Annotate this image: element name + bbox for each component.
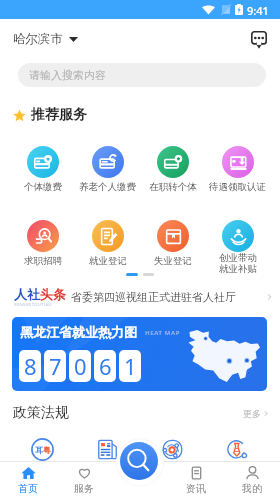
staticText: 头条 — [40, 286, 66, 302]
staticText: 耳 — [35, 445, 43, 455]
staticText: 更多 — [243, 408, 261, 419]
button[interactable]: 哈尔滨市 — [13, 31, 78, 47]
staticText: 请输入搜索内容 — [29, 68, 106, 82]
staticText: 养老个人缴费 — [79, 181, 136, 193]
button[interactable]: 就业登记 — [75, 220, 140, 267]
button[interactable]: Policy category 4 — [226, 438, 249, 461]
staticText: 待遇领取认证 — [209, 181, 266, 193]
button[interactable]: 资讯 — [168, 461, 224, 500]
staticText: 黑龙江省就业热力图 — [20, 324, 137, 340]
button[interactable]: 待遇领取认证 — [205, 146, 270, 193]
button[interactable]: 人社 — [14, 286, 272, 308]
staticText: 服务 — [74, 482, 94, 495]
staticText: 政策法规 — [13, 404, 69, 422]
staticText: 求职招聘 — [24, 255, 62, 267]
button[interactable]: 更多 — [243, 408, 268, 419]
staticText: 创业带动 就业补贴 — [219, 252, 257, 275]
button[interactable]: 失业登记 — [140, 220, 205, 267]
staticText: 6 — [99, 351, 112, 381]
button[interactable]: Policy category 2 — [96, 438, 119, 461]
staticText: 9:41 — [247, 3, 269, 18]
staticText: 1 — [124, 351, 137, 381]
staticText: 就业登记 — [89, 255, 127, 267]
button[interactable]: 黑龙江省就业热力图 — [12, 317, 267, 391]
button[interactable]: 请输入搜索内容 — [18, 63, 266, 87]
button[interactable]: 服务 — [56, 461, 112, 500]
button[interactable]: 我的 — [224, 461, 280, 500]
button[interactable]: 在职转个体 — [140, 146, 205, 193]
staticText: 首页 — [18, 482, 38, 495]
button[interactable]: 个体缴费 — [10, 146, 75, 193]
staticText: 个体缴费 — [24, 181, 62, 193]
button[interactable]: Search — [120, 442, 158, 480]
button[interactable]: Policy category 3 — [161, 438, 184, 461]
staticText: 人社 — [14, 286, 40, 302]
staticText: 0 — [74, 351, 87, 381]
staticText: 推荐服务 — [31, 106, 87, 124]
button[interactable]: Policy category 1 — [31, 438, 54, 461]
staticText: 粤 — [43, 445, 51, 455]
button[interactable]: 创业带动 就业补贴 — [205, 220, 270, 275]
staticText: 省委第四巡视组正式进驻省人社厅 — [71, 290, 267, 304]
button[interactable]: 养老个人缴费 — [75, 146, 140, 193]
staticText: 在职转个体 — [149, 181, 197, 193]
staticText: 我的 — [242, 482, 262, 495]
button[interactable]: 首页 — [0, 461, 56, 500]
staticText: 失业登记 — [154, 255, 192, 267]
staticText: 8 — [24, 351, 37, 381]
staticText: 资讯 — [186, 482, 206, 495]
staticText: 7 — [49, 351, 62, 381]
button[interactable]: 求职招聘 — [10, 220, 75, 267]
button[interactable]: Messages — [247, 28, 270, 51]
staticText: HEAT MAP — [145, 329, 181, 337]
staticText: 哈尔滨市 — [13, 31, 63, 47]
staticText: RENSHETOUTIAO — [14, 302, 52, 308]
